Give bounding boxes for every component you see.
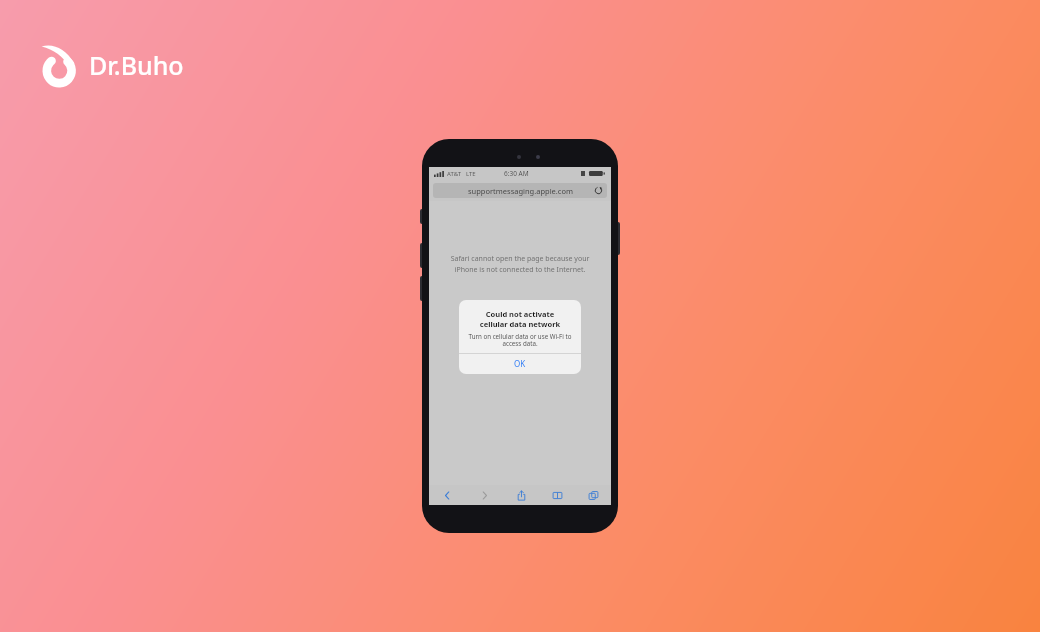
staticText: Could not activate cellular data network: [471, 309, 569, 329]
staticText: OK: [514, 358, 526, 369]
button[interactable]: OK: [459, 353, 581, 374]
button[interactable]: Back: [429, 485, 466, 505]
button[interactable]: Reload: [594, 186, 603, 195]
staticText: AT&T: [447, 170, 461, 178]
button[interactable]: Forward: [466, 485, 503, 505]
staticText: supportmessaging.apple.com: [468, 186, 573, 196]
staticText: LTE: [466, 170, 476, 178]
staticText: Turn on cellular data or use Wi-Fi to ac…: [468, 332, 572, 348]
staticText: Safari cannot open the page because your…: [450, 254, 590, 274]
staticText: 6:30 AM: [504, 169, 529, 178]
button[interactable]: Bookmarks: [539, 485, 575, 505]
button[interactable]: Share: [503, 485, 539, 505]
staticText: Dr.Buho: [89, 48, 184, 82]
button[interactable]: Dr.Buho: [40, 43, 184, 87]
button[interactable]: supportmessaging.apple.com: [433, 183, 607, 198]
button[interactable]: Tabs: [575, 485, 611, 505]
